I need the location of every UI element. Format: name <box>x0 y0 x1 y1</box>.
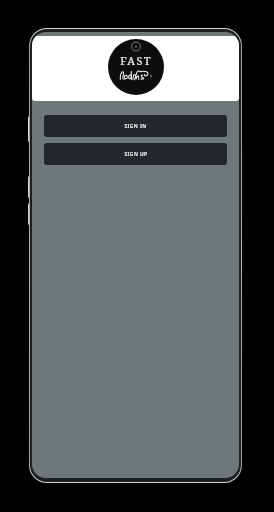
button[interactable]: SIGN UP <box>44 143 227 165</box>
staticText: SIGN IN <box>124 123 147 130</box>
button[interactable]: SIGN IN <box>44 115 227 137</box>
staticText: FAST <box>120 53 152 68</box>
staticText: SIGN UP <box>124 151 148 158</box>
